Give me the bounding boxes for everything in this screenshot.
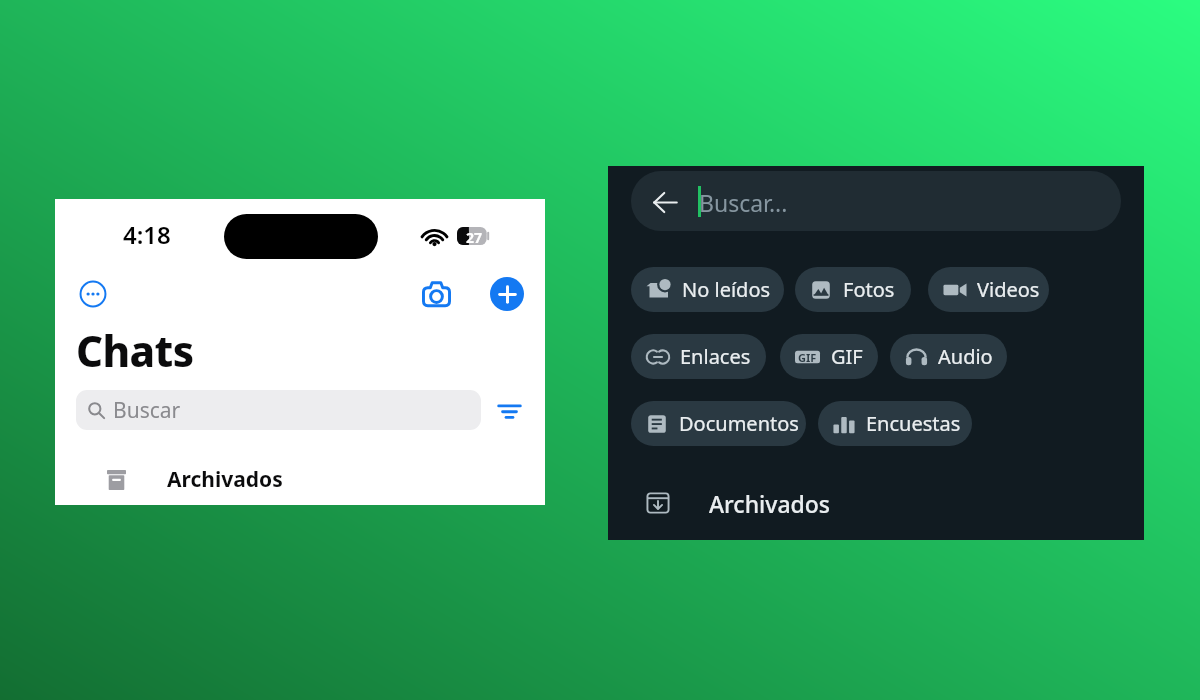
button[interactable]: Camera <box>416 274 457 315</box>
button[interactable]: Videos <box>928 267 1049 312</box>
button[interactable]: Filter <box>493 396 525 426</box>
staticText: Buscar... <box>699 187 788 218</box>
staticText: Videos <box>977 276 1040 303</box>
button[interactable]: Buscar <box>76 390 481 430</box>
staticText: Audio <box>938 343 993 370</box>
staticText: Documentos <box>679 410 799 437</box>
button[interactable]: Enlaces <box>631 334 766 379</box>
staticText: Enlaces <box>680 343 751 370</box>
button[interactable]: Back <box>631 171 1121 231</box>
button[interactable]: Back <box>645 182 686 223</box>
button[interactable]: Audio <box>890 334 1007 379</box>
staticText: Archivados <box>709 488 831 519</box>
button[interactable]: GIF <box>780 334 878 379</box>
button[interactable]: Encuestas <box>818 401 972 446</box>
button[interactable]: No leídos <box>631 267 784 312</box>
staticText: Fotos <box>843 276 895 303</box>
staticText: No leídos <box>682 276 771 303</box>
button[interactable]: Archivados <box>55 456 545 503</box>
staticText: Chats <box>76 322 194 379</box>
staticText: Encuestas <box>866 410 961 437</box>
button[interactable]: Fotos <box>795 267 911 312</box>
staticText: Archivados <box>167 465 283 494</box>
staticText: 27 <box>466 228 483 246</box>
staticText: Buscar <box>113 396 181 425</box>
button[interactable]: Documentos <box>631 401 806 446</box>
staticText: GIF <box>831 343 863 370</box>
staticText: GIF <box>798 350 817 365</box>
button[interactable]: Archivados <box>608 480 1144 526</box>
staticText: 4:18 <box>123 218 171 251</box>
button[interactable]: More options <box>75 276 111 312</box>
button[interactable]: New chat <box>490 277 524 311</box>
